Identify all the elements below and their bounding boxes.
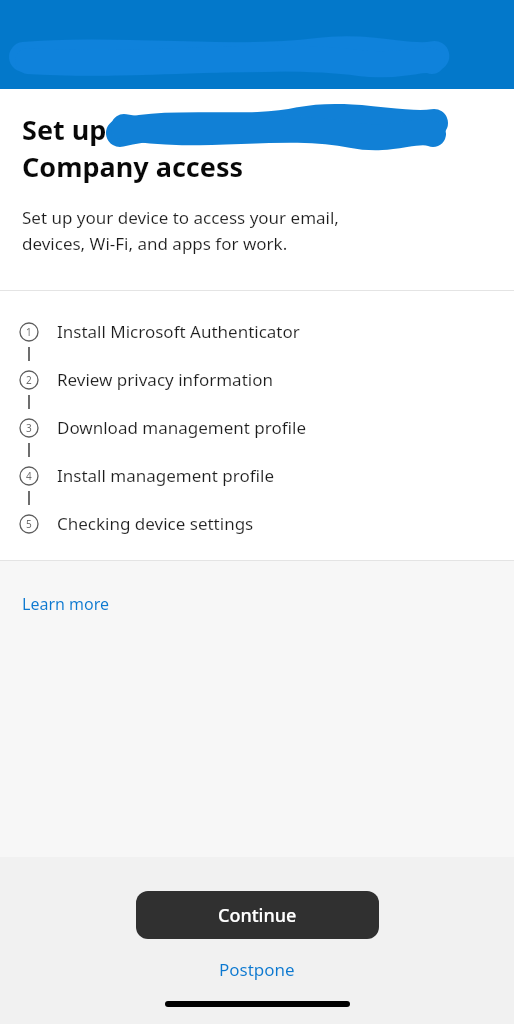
button[interactable]: 1 [0, 321, 514, 369]
staticText: Continue [218, 903, 297, 928]
button[interactable]: 3 [0, 417, 514, 465]
staticText: Install Microsoft Authenticator [57, 320, 300, 343]
staticText: 1 [26, 325, 32, 339]
staticText: 5 [26, 517, 32, 531]
staticText: Set up your device to access your email,… [22, 206, 339, 255]
button[interactable]: 5 [0, 513, 514, 560]
staticText: Review privacy information [57, 368, 273, 391]
staticText: Checking device settings [57, 512, 254, 535]
staticText: Company access [22, 148, 244, 185]
staticText: 4 [26, 469, 32, 483]
button[interactable]: Postpone [172, 952, 342, 986]
button[interactable]: 2 [0, 369, 514, 417]
staticText: Install management profile [57, 464, 274, 487]
staticText: Download management profile [57, 416, 306, 439]
other: App bar [0, 0, 514, 89]
staticText: 2 [26, 373, 32, 387]
staticText: Set up [22, 111, 107, 148]
button[interactable]: Continue [136, 891, 379, 939]
button[interactable]: 4 [0, 465, 514, 513]
button[interactable]: Learn more [22, 593, 109, 615]
staticText: Learn more [22, 593, 109, 615]
staticText: Postpone [219, 958, 295, 981]
staticText: 3 [26, 421, 32, 435]
